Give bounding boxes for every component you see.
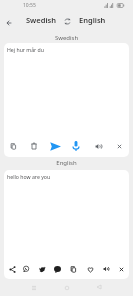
button[interactable]: Twitter [35, 262, 49, 276]
button[interactable]: Microphone [69, 139, 83, 153]
button[interactable]: Swap languages [60, 14, 74, 28]
button[interactable]: Speak [99, 262, 113, 276]
button[interactable]: Recent apps [27, 281, 41, 295]
button[interactable]: English [76, 13, 109, 27]
button[interactable]: Copy [66, 262, 80, 276]
staticText: Hej hur mår du [7, 46, 45, 53]
staticText: Swedish [0, 34, 133, 42]
button[interactable]: Home [60, 281, 74, 295]
button[interactable]: Close [112, 139, 126, 153]
button[interactable]: Swedish [23, 13, 60, 27]
staticText: 10:55 [23, 2, 36, 9]
button[interactable]: WhatsApp [19, 262, 33, 276]
staticText: English [0, 159, 133, 167]
button[interactable]: Close [114, 262, 128, 276]
button[interactable]: Send [48, 139, 62, 153]
button[interactable]: Copy [6, 139, 20, 153]
button[interactable]: Back [92, 280, 106, 294]
button[interactable]: Speak [91, 139, 105, 153]
button[interactable]: Share [5, 262, 19, 276]
staticText: English [79, 15, 106, 25]
button[interactable]: Back [2, 16, 16, 30]
staticText: Swedish [26, 15, 57, 25]
button[interactable]: Messenger [50, 262, 64, 276]
button[interactable]: Delete [27, 139, 41, 153]
button[interactable]: Favorite [83, 262, 97, 276]
staticText: hello how are you [7, 173, 51, 180]
